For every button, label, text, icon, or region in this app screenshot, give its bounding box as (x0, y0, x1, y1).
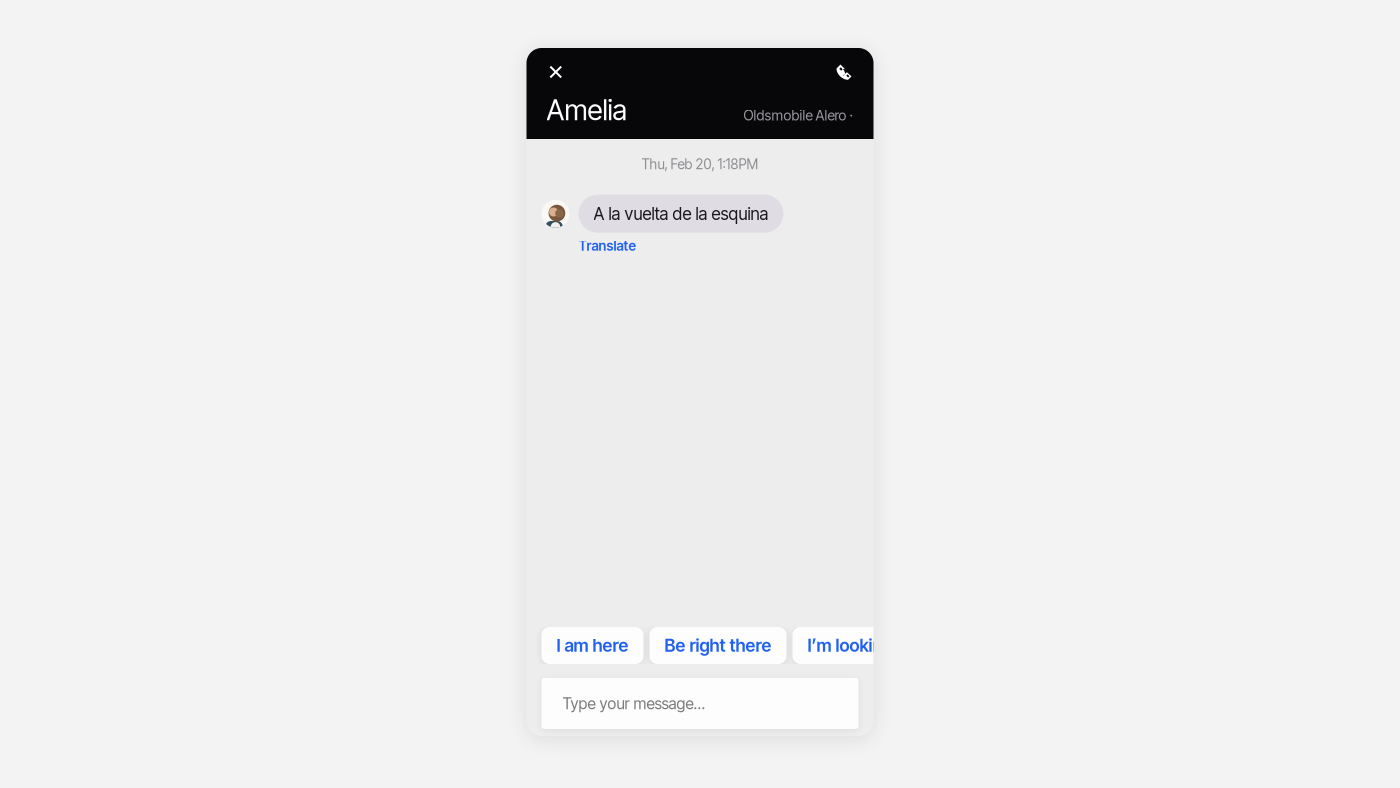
button[interactable]: Type your message... (541, 678, 858, 729)
staticText: Thu, Feb 20, 1:18PM (641, 156, 758, 173)
button[interactable]: I’m looking for you (792, 627, 966, 664)
staticText: Be right there (664, 635, 771, 656)
button[interactable]: I am here (541, 627, 643, 664)
staticText: Type your message... (562, 694, 705, 713)
staticText: Oldsmobile Alero · (743, 107, 852, 124)
button[interactable]: Call (828, 60, 852, 84)
staticText: I’m looking for you (807, 635, 951, 656)
staticText: I am here (556, 635, 628, 656)
button[interactable]: Translate (541, 233, 635, 257)
button[interactable]: Be right there (649, 627, 786, 664)
staticText: A la vuelta de la esquina (593, 203, 768, 224)
button[interactable]: Close (546, 60, 570, 84)
staticText: Amelia (546, 93, 626, 127)
staticText: Translate (578, 238, 635, 254)
